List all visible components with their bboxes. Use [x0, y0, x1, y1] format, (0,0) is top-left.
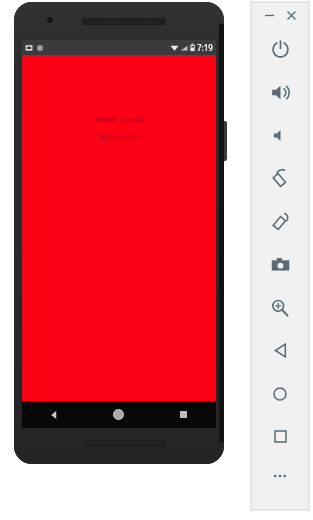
- button[interactable]: Back: [22, 401, 86, 428]
- button[interactable]: Volume down: [251, 114, 309, 157]
- staticText: 7:19: [197, 42, 213, 53]
- button[interactable]: Rotate left: [251, 157, 309, 200]
- staticText: Good Mobile: [98, 132, 141, 142]
- button[interactable]: Volume up: [251, 71, 309, 114]
- button[interactable]: Home: [86, 401, 151, 428]
- staticText: Mobile is good: [95, 115, 144, 125]
- button[interactable]: Home: [251, 372, 309, 415]
- button[interactable]: Take screenshot: [251, 243, 309, 286]
- button[interactable]: Recent apps: [151, 401, 216, 428]
- button[interactable]: Power: [251, 28, 309, 71]
- button[interactable]: Rotate right: [251, 200, 309, 243]
- button[interactable]: More: [251, 458, 309, 501]
- button[interactable]: Close: [282, 6, 300, 24]
- button[interactable]: Back: [251, 329, 309, 372]
- button[interactable]: Zoom: [251, 286, 309, 329]
- button[interactable]: Overview: [251, 415, 309, 458]
- button[interactable]: Minimize: [260, 6, 278, 24]
